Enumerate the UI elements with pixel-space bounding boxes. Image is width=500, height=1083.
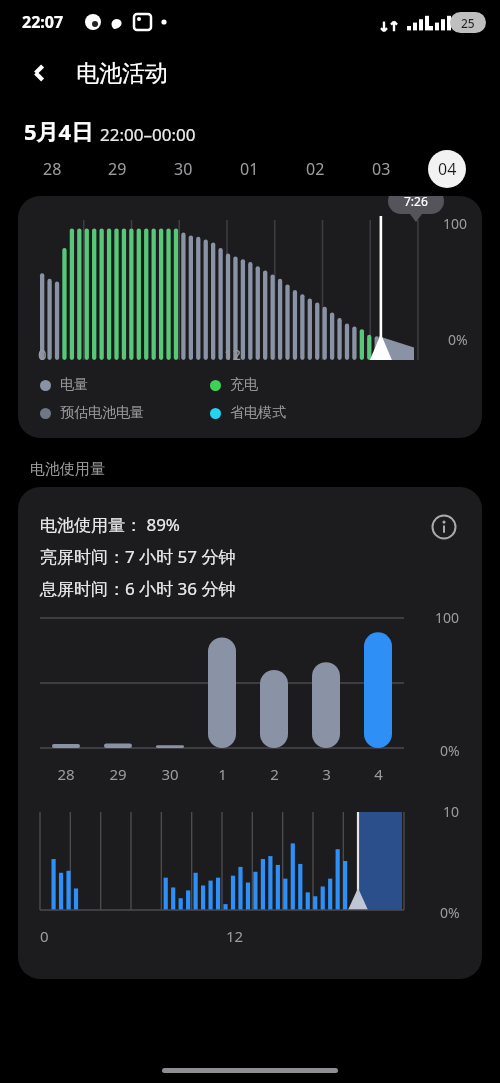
staticText: 电池活动 — [76, 59, 168, 88]
staticText: 04 — [438, 158, 457, 180]
staticText: 30 — [174, 158, 193, 180]
staticText: 100 — [443, 214, 468, 233]
button[interactable]: 03 — [348, 146, 414, 192]
staticText: 12 — [226, 926, 244, 946]
staticText: 25 — [461, 15, 475, 31]
staticText: 2 — [270, 764, 279, 784]
staticText: 充电 — [230, 376, 258, 394]
staticText: 28 — [57, 764, 75, 784]
button[interactable]: 02 — [282, 146, 348, 192]
button[interactable]: 29 — [85, 146, 150, 192]
staticText: 5月4日 — [24, 116, 94, 146]
staticText: 电量 — [60, 376, 88, 394]
staticText: 电池使用量 — [30, 460, 105, 479]
staticText: 0% — [440, 903, 460, 922]
staticText: 29 — [108, 158, 127, 180]
staticText: 28 — [43, 158, 62, 180]
button[interactable]: 28 — [20, 146, 85, 192]
staticText: 0% — [440, 741, 460, 760]
button[interactable]: 04 — [414, 146, 480, 192]
staticText: 7:26 — [404, 196, 428, 209]
staticText: 29 — [109, 764, 127, 784]
staticText: 0 — [40, 926, 49, 946]
button[interactable]: Info — [424, 507, 464, 547]
staticText: 22:00–00:00 — [100, 123, 196, 146]
staticText: 息屏时间：6 小时 36 分钟 — [40, 577, 236, 600]
staticText: 电池使用量： 89% — [40, 513, 180, 536]
staticText: 100 — [435, 608, 460, 627]
staticText: 亮屏时间：7 小时 57 分钟 — [40, 545, 236, 568]
staticText: 预估电池电量 — [60, 404, 144, 422]
staticText: 4 — [374, 764, 383, 784]
button[interactable]: 30 — [150, 146, 216, 192]
staticText: 10 — [443, 802, 460, 821]
staticText: 0% — [448, 330, 468, 349]
staticText: 0 — [38, 344, 47, 364]
button[interactable]: Back — [16, 49, 64, 97]
staticText: 02 — [306, 158, 325, 180]
staticText: 12 — [224, 344, 242, 364]
staticText: 22:07 — [22, 11, 64, 33]
staticText: 省电模式 — [230, 404, 286, 422]
staticText: 30 — [161, 764, 179, 784]
staticText: 3 — [322, 764, 331, 784]
staticText: 03 — [372, 158, 391, 180]
staticText: 01 — [240, 158, 259, 180]
button[interactable]: 01 — [216, 146, 282, 192]
staticText: 1 — [218, 764, 227, 784]
